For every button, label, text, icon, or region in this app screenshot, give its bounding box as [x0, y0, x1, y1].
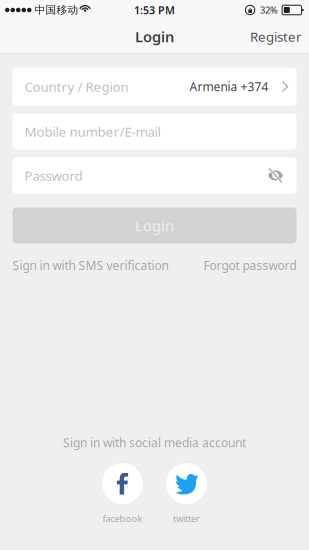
button[interactable]: twitter [166, 463, 207, 524]
button[interactable]: facebook [102, 463, 143, 524]
staticText: Login [135, 27, 174, 46]
staticText: Sign in with SMS verification [12, 257, 168, 273]
staticText: facebook [102, 512, 142, 524]
button[interactable]: Forgot password [203, 257, 296, 273]
staticText: 1:53 PM [134, 3, 175, 17]
button[interactable]: Login [12, 207, 296, 243]
staticText: Password [24, 167, 82, 184]
button[interactable]: Register [236, 21, 309, 52]
staticText: Sign in with social media account [63, 435, 246, 451]
staticText: Armenia +374 [189, 78, 268, 94]
staticText: Register [250, 28, 302, 45]
staticText: Login [135, 216, 174, 235]
button[interactable]: Country / Region [12, 67, 296, 105]
staticText: Forgot password [203, 257, 296, 273]
staticText: 中国移动 [34, 3, 78, 16]
staticText: Country / Region [24, 78, 128, 95]
button[interactable]: Sign in with SMS verification [12, 257, 168, 273]
staticText: twitter [173, 512, 200, 524]
staticText: 32% [260, 4, 278, 16]
staticText: Mobile number/E-mail [24, 123, 160, 140]
button[interactable]: Show password [264, 161, 286, 189]
